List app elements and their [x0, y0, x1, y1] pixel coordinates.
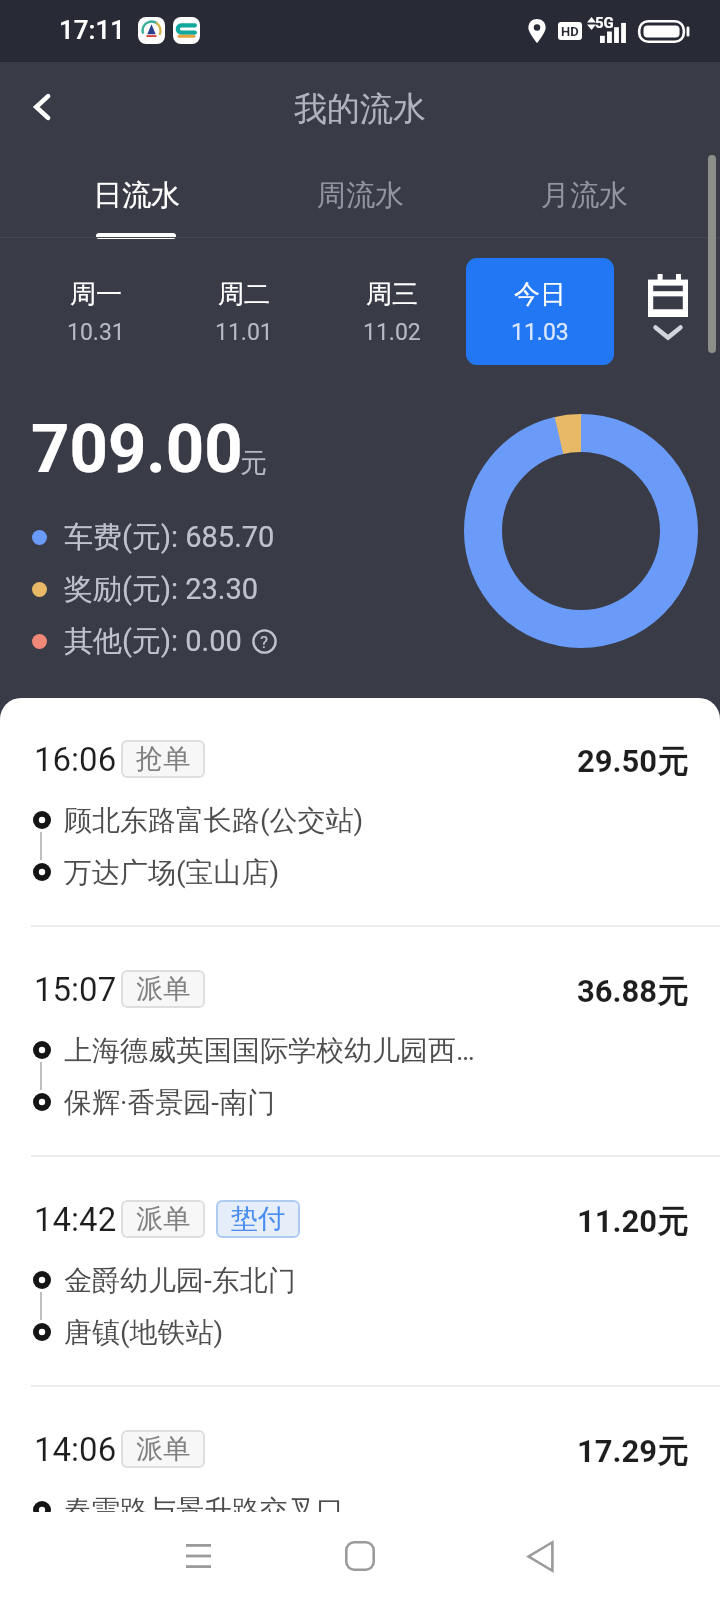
button[interactable]: 14:06	[0, 1388, 720, 1600]
staticText: 周三	[366, 278, 418, 311]
staticText: 11.03	[511, 319, 569, 346]
button[interactable]: 周一	[22, 258, 170, 365]
button[interactable]: 周三	[318, 258, 466, 365]
staticText: ?	[260, 632, 269, 652]
button[interactable]: 14:42	[0, 1158, 720, 1386]
button[interactable]: 派单	[121, 970, 205, 1008]
staticText: 垫付	[231, 1202, 285, 1236]
staticText: HD	[561, 24, 579, 39]
staticText: 月流水	[541, 177, 628, 214]
staticText: 36.88元	[577, 972, 689, 1011]
button[interactable]: 周流水	[248, 152, 472, 238]
staticText: 周二	[218, 278, 270, 311]
button[interactable]: 周二	[170, 258, 318, 365]
button[interactable]: 15:07	[0, 928, 720, 1156]
button[interactable]: 垫付	[216, 1200, 300, 1238]
staticText: 上海德威英国国际学校幼儿园西…	[64, 1033, 475, 1068]
staticText: 保辉·香景园-南门	[64, 1085, 276, 1120]
staticText: 17:11	[59, 15, 125, 45]
staticText: 唐镇(地铁站)	[64, 1315, 224, 1350]
staticText: 周一	[70, 278, 122, 311]
staticText: 5G	[595, 14, 614, 32]
staticText: 其他(元): 0.00	[64, 623, 242, 659]
staticText: 14:42	[34, 1200, 117, 1239]
button[interactable]: 日流水	[24, 152, 248, 238]
staticText: 14:06	[34, 1430, 117, 1469]
staticText: 春雷路与景升路交叉口	[64, 1493, 344, 1528]
button[interactable]: Back	[18, 84, 64, 130]
staticText: 11.20元	[577, 1202, 689, 1241]
button[interactable]: 今日	[466, 258, 614, 365]
button[interactable]: Recents	[138, 1512, 258, 1600]
button[interactable]: Home	[300, 1512, 420, 1600]
button[interactable]: 抢单	[121, 740, 205, 778]
staticText: 今日	[514, 278, 566, 311]
staticText: 车费(元): 685.70	[64, 519, 275, 555]
staticText: 709.00	[31, 410, 243, 489]
staticText: 15:07	[34, 970, 117, 1009]
staticText: 派单	[136, 1432, 190, 1466]
button[interactable]: 16:06	[0, 698, 720, 926]
staticText: 顾北东路富长路(公交站)	[64, 803, 364, 838]
button[interactable]: Back	[480, 1512, 600, 1600]
staticText: 29.50元	[577, 742, 689, 781]
staticText: 10.31	[67, 319, 125, 346]
staticText: 我的流水	[294, 88, 426, 130]
staticText: 元	[240, 446, 267, 480]
staticText: 派单	[136, 972, 190, 1006]
button[interactable]: 月流水	[472, 152, 696, 238]
staticText: 17.29元	[577, 1432, 689, 1471]
staticText: 16:06	[34, 740, 117, 779]
staticText: 金爵幼儿园-东北门	[64, 1263, 296, 1298]
staticText: 浦东国际机场	[64, 1545, 232, 1580]
button[interactable]: Pick date	[622, 239, 714, 374]
staticText: 抢单	[136, 742, 190, 776]
button[interactable]: 派单	[121, 1430, 205, 1468]
button[interactable]: Help	[252, 629, 277, 654]
button[interactable]: 派单	[121, 1200, 205, 1238]
staticText: 奖励(元): 23.30	[64, 571, 259, 607]
staticText: 周流水	[317, 177, 404, 214]
staticText: 11.02	[363, 319, 421, 346]
staticText: 日流水	[93, 177, 180, 214]
staticText: 11.01	[215, 319, 273, 346]
staticText: 万达广场(宝山店)	[64, 855, 280, 890]
staticText: 派单	[136, 1202, 190, 1236]
